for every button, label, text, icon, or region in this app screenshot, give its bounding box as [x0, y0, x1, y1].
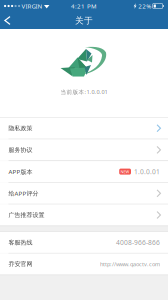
- staticText: 当前版本:1.0.0.01: [60, 88, 107, 96]
- staticText: VIRGIN: [21, 2, 42, 10]
- button[interactable]: 乔安官网: [0, 254, 168, 275]
- staticText: 隐私政策: [8, 124, 32, 132]
- staticText: 乔安官网: [8, 260, 32, 268]
- staticText: 给APP评分: [8, 189, 38, 197]
- staticText: 1.0.0.01: [134, 167, 160, 176]
- staticText: 4008-966-866: [116, 238, 160, 247]
- staticText: http://www.qaoctv.com: [100, 260, 160, 268]
- button[interactable]: Back: [0, 13, 20, 28]
- button[interactable]: 广告推荐设置: [0, 204, 168, 225]
- staticText: 4:21 PM: [71, 2, 97, 10]
- staticText: APP版本: [8, 167, 32, 176]
- staticText: 广告推荐设置: [8, 211, 44, 219]
- staticText: NEW: [121, 169, 130, 174]
- staticText: 客服热线: [8, 239, 32, 246]
- staticText: 22%: [138, 2, 151, 10]
- button[interactable]: 隐私政策: [0, 118, 168, 139]
- button[interactable]: 服务协议: [0, 139, 168, 160]
- button[interactable]: 给APP评分: [0, 183, 168, 204]
- button[interactable]: 客服热线: [0, 232, 168, 253]
- staticText: 关于: [75, 15, 93, 26]
- staticText: 服务协议: [8, 146, 32, 154]
- button[interactable]: APP版本: [0, 161, 168, 182]
